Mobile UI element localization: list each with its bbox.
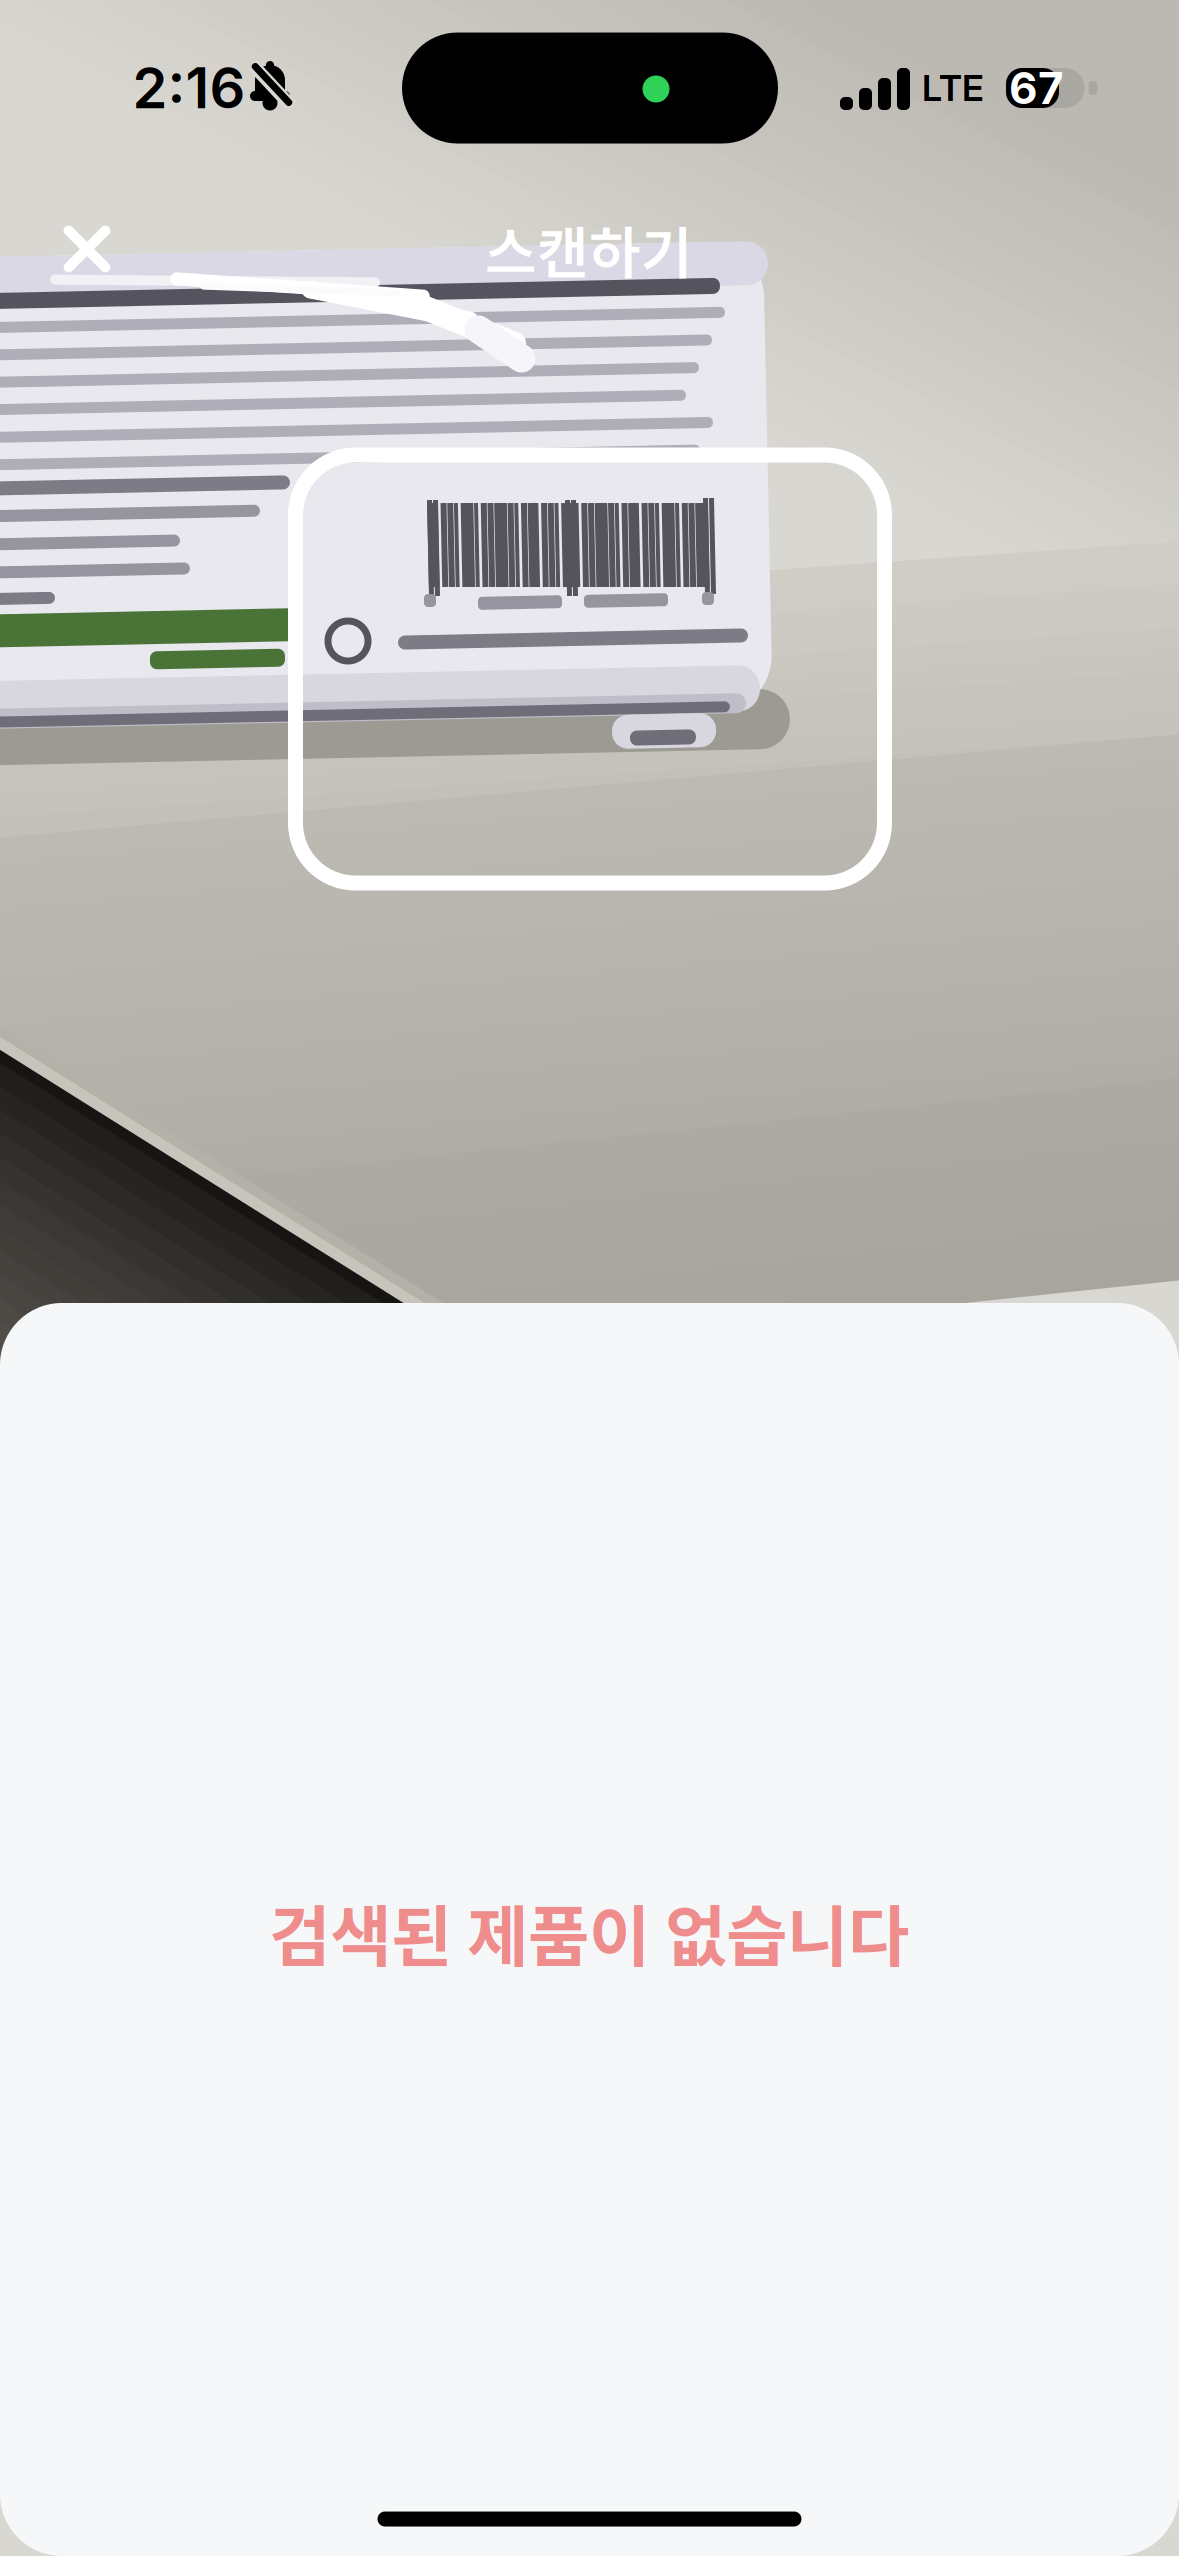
staticText: 검색된 제품이 없습니다 (269, 1884, 909, 1980)
staticText: 스캔하기 (485, 208, 693, 290)
staticText: 67 (1009, 61, 1064, 115)
button[interactable]: Close (21, 183, 153, 315)
staticText: 2:16 (132, 54, 245, 122)
staticText: LTE (922, 66, 984, 110)
